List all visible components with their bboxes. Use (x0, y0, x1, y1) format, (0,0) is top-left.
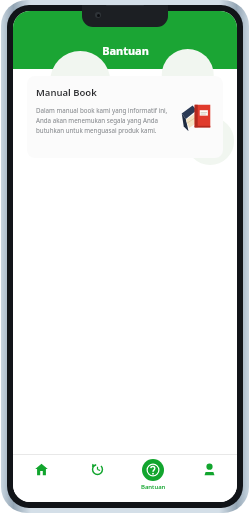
staticText: Manual Book (36, 86, 97, 99)
button[interactable]: Bantuan (125, 455, 181, 502)
staticText: Bantuan (102, 43, 149, 58)
button[interactable]: Home (13, 455, 69, 502)
button[interactable]: Manual Book (27, 76, 223, 158)
staticText: Bantuan (141, 483, 166, 491)
staticText: Dalam manual book kami yang informatif i… (36, 106, 175, 135)
button[interactable]: History (69, 455, 125, 502)
button[interactable]: Profile (181, 455, 237, 502)
